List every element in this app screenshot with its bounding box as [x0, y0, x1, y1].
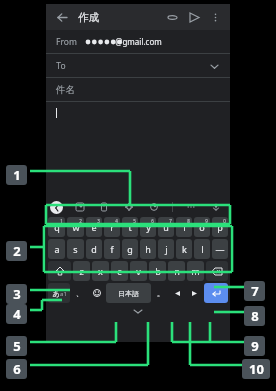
- button[interactable]: p: [212, 217, 228, 237]
- staticText: 、: [76, 289, 83, 298]
- staticText: 7: [251, 282, 259, 300]
- button[interactable]: r: [104, 217, 120, 237]
- staticText: 0: [223, 218, 226, 224]
- button[interactable]: Voice input: [209, 200, 223, 214]
- button[interactable]: Move cursor right: [187, 283, 202, 303]
- staticText: 2: [79, 218, 82, 224]
- staticText: s: [73, 243, 78, 255]
- staticText: 8: [251, 307, 259, 325]
- button[interactable]: Expand toolbar: [50, 201, 63, 214]
- button[interactable]: s: [67, 239, 84, 259]
- button[interactable]: a: [48, 239, 65, 259]
- staticText: o: [199, 221, 205, 233]
- staticText: 9: [251, 337, 259, 355]
- staticText: 9: [205, 218, 208, 224]
- button[interactable]: From: [46, 30, 230, 53]
- button[interactable]: w: [67, 217, 84, 237]
- staticText: 7: [169, 218, 172, 224]
- staticText: l: [201, 243, 204, 255]
- button[interactable]: Emoji: [89, 283, 104, 303]
- button[interactable]: More options: [208, 10, 222, 24]
- staticText: —: [215, 243, 225, 255]
- button[interactable]: j: [158, 239, 174, 259]
- staticText: h: [145, 243, 151, 255]
- button[interactable]: Enter: [204, 283, 228, 303]
- staticText: a: [54, 243, 60, 255]
- button[interactable]: Clipboard: [97, 200, 111, 214]
- staticText: 4: [115, 218, 118, 224]
- staticText: g: [127, 243, 133, 255]
- button[interactable]: x: [92, 261, 109, 281]
- staticText: 8: [187, 218, 190, 224]
- button[interactable]: u: [158, 217, 174, 237]
- staticText: d: [91, 243, 97, 255]
- staticText: w: [72, 221, 80, 233]
- button[interactable]: Attach: [164, 9, 180, 25]
- staticText: z: [79, 265, 84, 277]
- staticText: @gmail.com: [115, 36, 162, 47]
- button[interactable]: More: [184, 200, 198, 214]
- staticText: m: [191, 265, 200, 277]
- button[interactable]: g: [122, 239, 138, 259]
- button[interactable]: n: [168, 261, 185, 281]
- staticText: 。: [157, 289, 164, 298]
- staticText: 1: [13, 166, 21, 184]
- button[interactable]: m: [187, 261, 204, 281]
- button[interactable]: t: [122, 217, 138, 237]
- button[interactable]: c: [111, 261, 128, 281]
- other: Backspace: [206, 261, 228, 281]
- button[interactable]: Backspace: [206, 261, 228, 281]
- staticText: 5: [133, 218, 136, 224]
- button[interactable]: z: [73, 261, 90, 281]
- button[interactable]: Stickers: [73, 200, 87, 214]
- staticText: 6: [13, 360, 21, 378]
- staticText: 4: [13, 305, 21, 323]
- button[interactable]: l: [194, 239, 210, 259]
- button[interactable]: i: [176, 217, 192, 237]
- staticText: t: [128, 221, 132, 233]
- staticText: 3: [97, 218, 100, 224]
- staticText: e: [91, 221, 97, 233]
- button[interactable]: h: [140, 239, 156, 259]
- button[interactable]: Hide keyboard: [46, 305, 230, 317]
- button[interactable]: v: [130, 261, 147, 281]
- button[interactable]: d: [86, 239, 102, 259]
- staticText: f: [110, 243, 114, 255]
- button[interactable]: o: [194, 217, 210, 237]
- staticText: 件名: [56, 84, 75, 96]
- staticText: 作成: [78, 11, 99, 24]
- staticText: 10: [249, 360, 264, 378]
- button[interactable]: Back: [54, 9, 70, 25]
- button[interactable]: e: [86, 217, 102, 237]
- other: Shift: [48, 261, 71, 281]
- staticText: 日本語: [118, 289, 139, 298]
- button[interactable]: 件名: [46, 78, 230, 101]
- staticText: u: [163, 221, 169, 233]
- staticText: v: [136, 265, 141, 277]
- staticText: 3: [13, 285, 21, 303]
- staticText: n: [174, 265, 180, 277]
- button[interactable]: f: [104, 239, 120, 259]
- button[interactable]: 、: [72, 283, 87, 303]
- staticText: k: [182, 243, 187, 255]
- button[interactable]: k: [176, 239, 192, 259]
- staticText: q: [54, 221, 60, 233]
- button[interactable]: To: [46, 54, 230, 77]
- staticText: To: [56, 60, 66, 72]
- button[interactable]: b: [149, 261, 166, 281]
- button[interactable]: Shift: [48, 261, 71, 281]
- button[interactable]: Send: [186, 9, 202, 25]
- button[interactable]: 日本語: [106, 283, 151, 303]
- button[interactable]: Themes: [147, 200, 161, 214]
- button[interactable]: Move cursor left: [170, 283, 185, 303]
- button[interactable]: y: [140, 217, 156, 237]
- staticText: 6: [151, 218, 154, 224]
- button[interactable]: q: [48, 217, 65, 237]
- button[interactable]: 。: [153, 283, 168, 303]
- staticText: 5: [13, 337, 21, 355]
- button[interactable]: あ: [48, 283, 70, 303]
- staticText: b: [155, 265, 161, 277]
- staticText: あ: [52, 289, 60, 298]
- button[interactable]: Settings: [122, 200, 136, 214]
- button[interactable]: —: [212, 239, 228, 259]
